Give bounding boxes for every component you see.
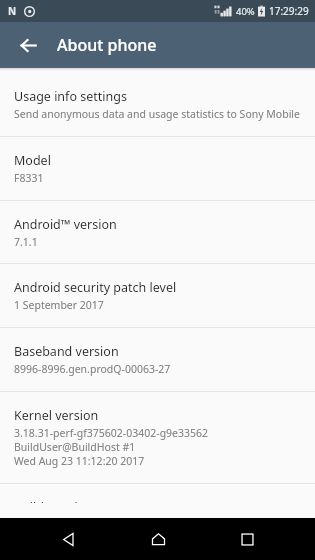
staticText: F8331 xyxy=(14,171,44,185)
button[interactable]: Back xyxy=(46,518,90,560)
button[interactable]: Android security patch level xyxy=(0,264,315,327)
staticText: Kernel version xyxy=(14,407,99,424)
button[interactable]: Baseband version xyxy=(0,328,315,391)
button[interactable]: Build number xyxy=(0,484,315,518)
staticText: Android™ version xyxy=(14,216,117,233)
button[interactable]: Kernel version xyxy=(0,392,315,483)
staticText: Wed Aug 23 11:12:20 2017 xyxy=(14,454,145,468)
staticText: 3.18.31-perf-gf375602-03402-g9e33562 xyxy=(14,426,209,440)
staticText: Baseband version xyxy=(14,343,119,360)
button[interactable]: Recent apps xyxy=(225,518,269,560)
staticText: 8996-8996.gen.prodQ-00063-27 xyxy=(14,362,171,376)
staticText: 1 September 2017 xyxy=(14,298,104,312)
button[interactable]: Android™ version xyxy=(0,201,315,263)
button[interactable]: Home xyxy=(136,518,180,560)
button[interactable]: Usage info settings xyxy=(0,72,315,136)
staticText: About phone xyxy=(57,34,157,56)
button[interactable]: Back xyxy=(13,30,43,60)
staticText: Model xyxy=(14,152,51,169)
staticText: 40% xyxy=(236,5,255,18)
staticText: 17:29:29 xyxy=(269,4,309,18)
staticText: Android security patch level xyxy=(14,279,177,296)
staticText: 7.1.1 xyxy=(14,235,38,249)
staticText: Usage info settings xyxy=(14,88,127,105)
staticText: Build number xyxy=(14,499,95,503)
staticText: N xyxy=(8,4,17,18)
staticText: BuildUser@BuildHost #1 xyxy=(14,440,136,454)
button[interactable]: Model xyxy=(0,137,315,200)
staticText: Send anonymous data and usage statistics… xyxy=(14,107,300,121)
